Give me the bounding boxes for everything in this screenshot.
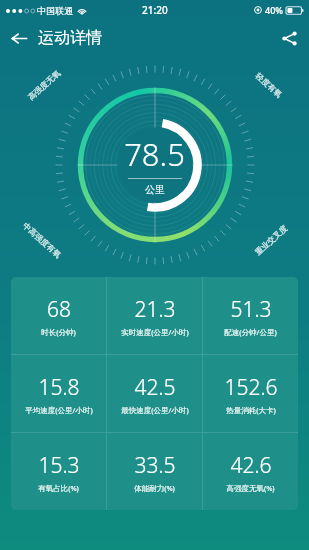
staticText: 轻度有氧 bbox=[254, 71, 284, 99]
button[interactable]: 15.8 bbox=[11, 355, 106, 432]
button[interactable]: 15.3 bbox=[11, 433, 106, 510]
staticText: 21.3 bbox=[134, 295, 176, 324]
staticText: 中高强度有氧 bbox=[21, 220, 63, 260]
button[interactable]: 21.3 bbox=[107, 277, 202, 354]
staticText: 42.5 bbox=[134, 373, 176, 402]
staticText: 有氧占比(%) bbox=[38, 483, 79, 493]
button[interactable]: 33.5 bbox=[107, 433, 202, 510]
button[interactable]: 68 bbox=[11, 277, 106, 354]
staticText: 40% bbox=[265, 4, 283, 16]
staticText: 体能耐力(%) bbox=[134, 483, 175, 493]
staticText: 78.5 bbox=[124, 133, 185, 175]
staticText: 高强度无氧 bbox=[26, 68, 62, 102]
button[interactable]: 152.6 bbox=[203, 355, 298, 432]
button[interactable]: Back bbox=[0, 20, 38, 56]
staticText: 最快速度(公里/小时) bbox=[121, 405, 189, 415]
staticText: 热量消耗(大卡) bbox=[226, 405, 276, 415]
staticText: 时长(分钟) bbox=[41, 327, 76, 337]
button[interactable]: Share bbox=[269, 20, 309, 56]
staticText: 重业交叉度 bbox=[253, 223, 289, 257]
staticText: 公里 bbox=[145, 183, 165, 196]
staticText: 51.3 bbox=[230, 295, 272, 324]
staticText: 42.6 bbox=[230, 451, 272, 480]
button[interactable]: 51.3 bbox=[203, 277, 298, 354]
staticText: 运动详情 bbox=[38, 28, 102, 48]
staticText: 68 bbox=[47, 295, 71, 324]
staticText: 152.6 bbox=[224, 373, 278, 402]
staticText: 高强度无氧(%) bbox=[226, 483, 275, 493]
staticText: 实时速度(公里/小时) bbox=[121, 327, 189, 337]
staticText: 中国联通 bbox=[37, 5, 73, 16]
staticText: 21:20 bbox=[142, 3, 168, 17]
staticText: 配速(分钟/公里) bbox=[224, 327, 277, 337]
staticText: 33.5 bbox=[134, 451, 176, 480]
staticText: 15.3 bbox=[38, 451, 80, 480]
staticText: 15.8 bbox=[38, 373, 80, 402]
button[interactable]: 42.5 bbox=[107, 355, 202, 432]
button[interactable]: 42.6 bbox=[203, 433, 298, 510]
staticText: 平均速度(公里/小时) bbox=[25, 405, 93, 415]
